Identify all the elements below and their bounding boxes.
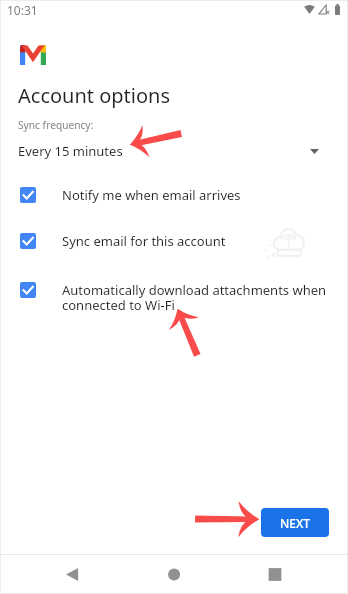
staticText: Every 15 minutes xyxy=(18,142,123,160)
button[interactable]: NEXT xyxy=(261,508,329,537)
button[interactable]: Notify me when email arrives xyxy=(0,187,348,205)
button[interactable]: Home xyxy=(164,564,184,584)
button[interactable]: Recent apps xyxy=(265,564,285,584)
staticText: Sync email for this account xyxy=(62,232,226,250)
button[interactable]: Automatically download attachments when … xyxy=(0,282,348,315)
button[interactable]: Every 15 minutes xyxy=(0,140,348,162)
staticText: NEXT xyxy=(280,515,311,531)
staticText: Notify me when email arrives xyxy=(62,186,241,204)
staticText: Account options xyxy=(18,82,171,109)
button[interactable]: Sync email for this account xyxy=(0,233,348,251)
staticText: Sync frequency: xyxy=(18,118,94,132)
staticText: 10:31 xyxy=(7,2,38,18)
button[interactable]: Back xyxy=(62,564,82,584)
staticText: Automatically download attachments when … xyxy=(62,281,327,314)
